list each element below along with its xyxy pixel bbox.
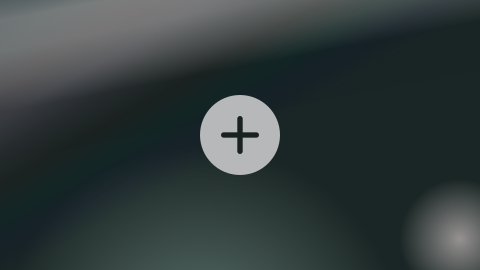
button[interactable]: Add xyxy=(200,95,280,175)
